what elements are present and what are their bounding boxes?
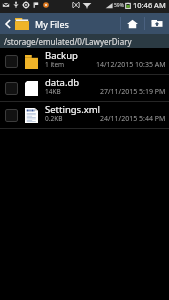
staticText: Backup <box>45 49 78 62</box>
staticText: 14KB <box>45 87 61 96</box>
staticText: 59% <box>114 2 124 9</box>
staticText: 27/11/2015 5:19 PM <box>100 87 166 97</box>
button[interactable]: Settings.xml <box>0 102 169 129</box>
staticText: 24/11/2015 5:44 PM <box>100 114 166 124</box>
staticText: 10:46 AM <box>133 0 166 10</box>
staticText: /storage/emulated/0/LawyerDiary <box>4 36 132 47</box>
staticText: Settings.xml <box>45 103 101 116</box>
button[interactable]: data.db <box>0 75 169 102</box>
button[interactable]: Backup <box>0 48 169 75</box>
staticText: 1 item <box>45 60 65 69</box>
staticText: 14/12/2015 10:35 AM <box>96 60 166 70</box>
button[interactable]: Up one level <box>145 13 169 34</box>
staticText: data.db <box>45 76 80 89</box>
button[interactable]: Back <box>0 13 15 34</box>
button[interactable]: Home <box>121 13 144 34</box>
staticText: My Files <box>35 18 69 30</box>
staticText: 0.2KB <box>45 114 63 123</box>
